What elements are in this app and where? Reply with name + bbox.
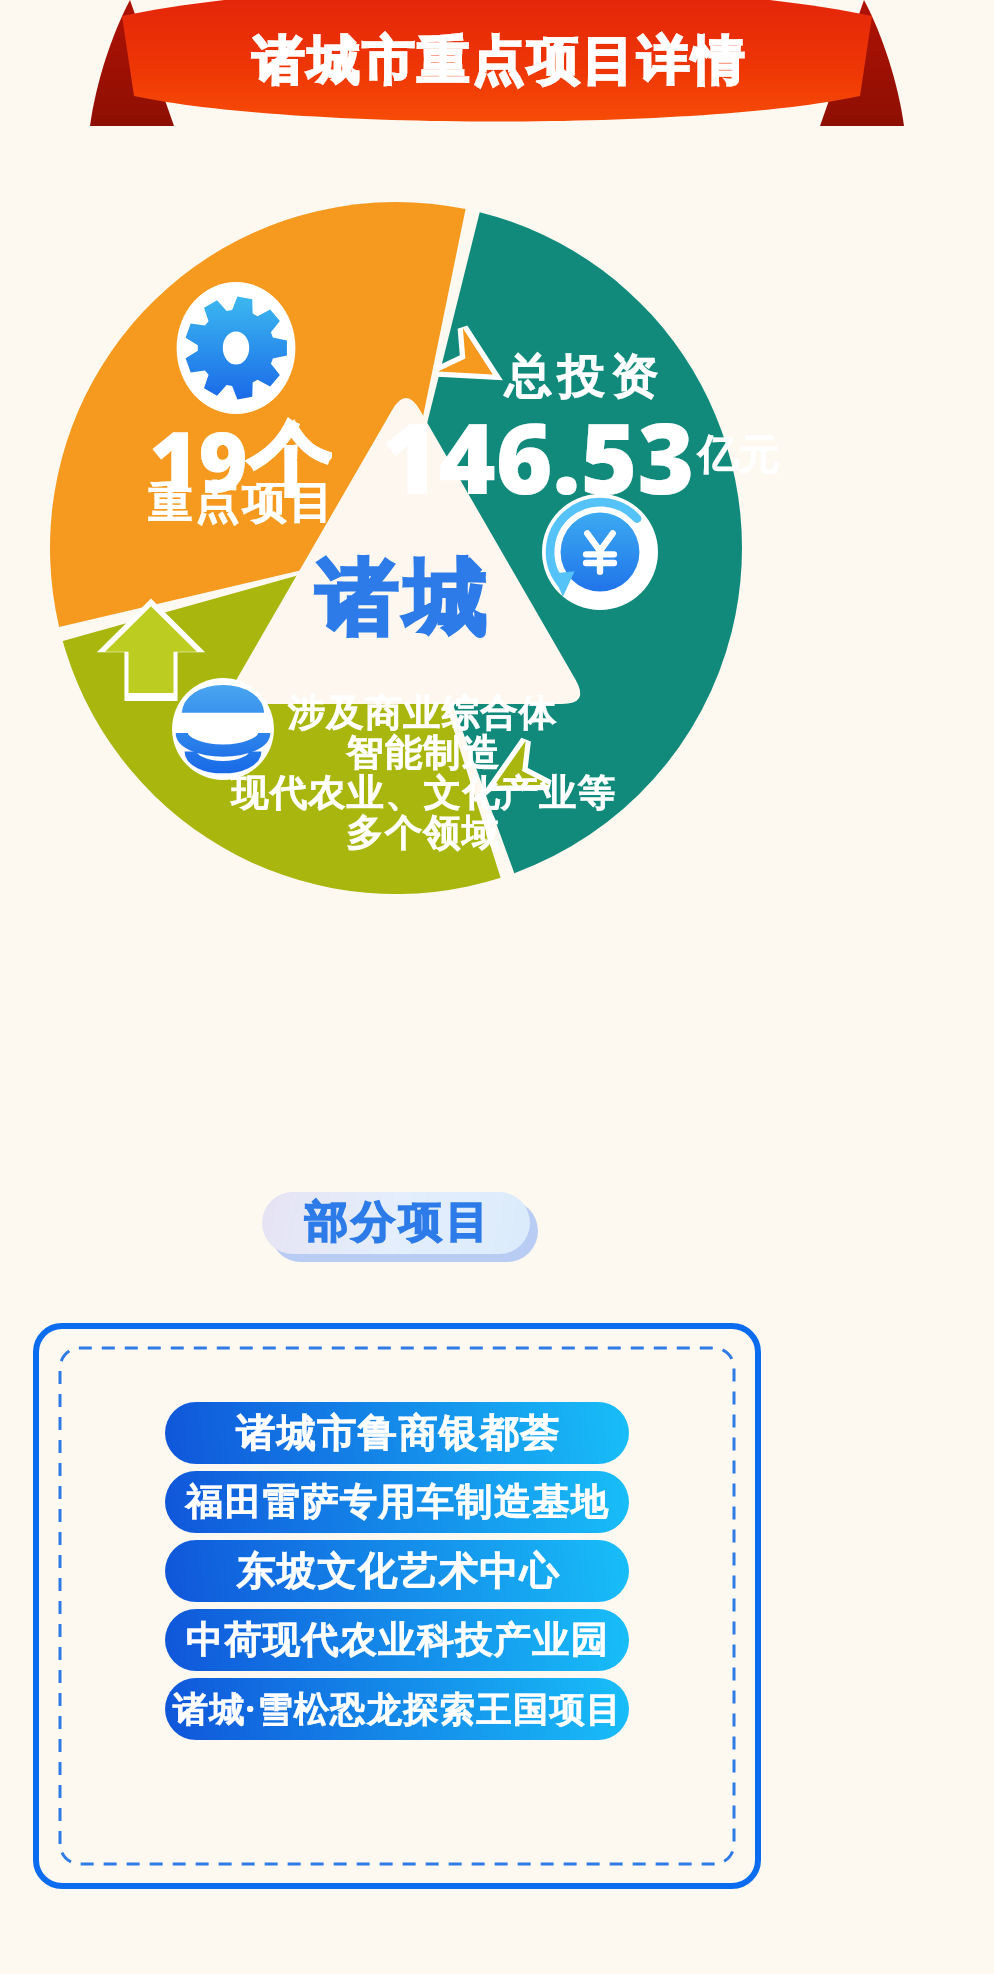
button[interactable]: Total investment — [542, 494, 658, 610]
staticText: 诸城·雪松恐龙探索王国项目 — [172, 1685, 622, 1733]
staticText: 总投资 — [501, 348, 660, 406]
button[interactable]: 诸城·雪松恐龙探索王国项目 — [165, 1678, 629, 1740]
staticText: 福田雷萨专用车制造基地 — [185, 1479, 609, 1526]
button[interactable]: 中荷现代农业科技产业园 — [165, 1609, 629, 1671]
button[interactable]: 部分项目 — [262, 1192, 530, 1254]
staticText: 现代农业、文化产业等 — [230, 770, 615, 814]
button[interactable]: 福田雷萨专用车制造基地 — [165, 1471, 629, 1533]
staticText: 中荷现代农业科技产业园 — [185, 1617, 609, 1664]
staticText: 多个领域 — [345, 810, 499, 854]
staticText: 重点项目 — [146, 476, 334, 531]
staticText: 智能制造 — [345, 730, 499, 774]
button[interactable]: Key projects — [170, 282, 302, 414]
button[interactable]: Project growth — [106, 604, 196, 694]
staticText: 诸城市鲁商银都荟 — [235, 1409, 559, 1458]
button[interactable]: 诸城市鲁商银都荟 — [165, 1402, 629, 1464]
staticText: 涉及商业综合体 — [287, 690, 557, 734]
staticText: 诸城 — [312, 548, 488, 644]
staticText: 亿元 — [697, 430, 779, 482]
staticText: 部分项目 — [302, 1196, 490, 1250]
staticText: 19个 — [149, 402, 332, 498]
button[interactable]: Industry sectors — [174, 680, 272, 778]
staticText: 东坡文化艺术中心 — [235, 1547, 559, 1596]
staticText: 146.53 — [382, 390, 695, 496]
staticText: 诸城市重点项目详情 — [250, 29, 745, 95]
button[interactable]: 东坡文化艺术中心 — [165, 1540, 629, 1602]
